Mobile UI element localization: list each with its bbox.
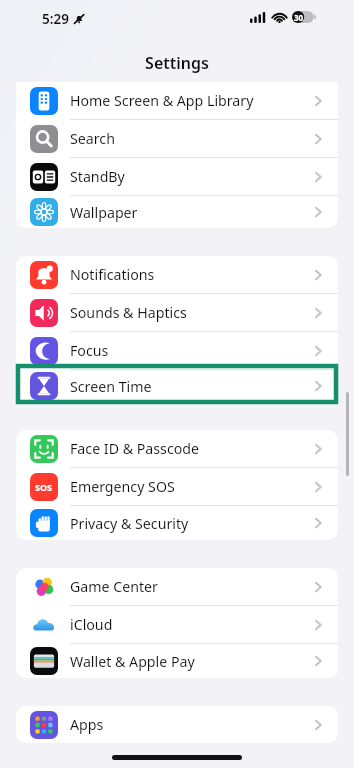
button[interactable]: SOS xyxy=(16,468,338,505)
staticText: Emergency SOS xyxy=(70,477,312,496)
staticText: Game Center xyxy=(70,577,312,596)
staticText: Notifications xyxy=(70,265,312,284)
button[interactable]: Wallpaper xyxy=(16,196,338,228)
button[interactable]: Face ID & Passcode xyxy=(16,430,338,467)
button[interactable]: Screen Time xyxy=(16,370,338,402)
button[interactable]: Privacy & Security xyxy=(16,506,338,540)
staticText: 30 xyxy=(294,12,304,23)
staticText: iCloud xyxy=(70,615,312,634)
button[interactable]: Home Screen & App Library xyxy=(16,82,338,119)
button[interactable]: Wallet & Apple Pay xyxy=(16,644,338,678)
staticText: Focus xyxy=(70,341,312,360)
button[interactable]: Game Center xyxy=(16,568,338,605)
staticText: Wallpaper xyxy=(70,203,312,222)
staticText: Search xyxy=(70,129,312,148)
staticText: StandBy xyxy=(70,167,312,186)
staticText: Settings xyxy=(0,52,354,74)
staticText: Wallet & Apple Pay xyxy=(70,652,312,671)
staticText: Screen Time xyxy=(70,377,312,396)
button[interactable]: Sounds & Haptics xyxy=(16,294,338,331)
button[interactable]: Notifications xyxy=(16,256,338,293)
staticText: SOS xyxy=(35,481,53,493)
button[interactable]: StandBy xyxy=(16,158,338,195)
staticText: Sounds & Haptics xyxy=(70,303,312,322)
staticText: Privacy & Security xyxy=(70,514,312,533)
button[interactable]: Apps xyxy=(16,706,338,743)
button[interactable]: iCloud xyxy=(16,606,338,643)
button[interactable]: Focus xyxy=(16,332,338,369)
staticText: Home Screen & App Library xyxy=(70,91,312,110)
staticText: 5:29 xyxy=(42,10,69,28)
staticText: Face ID & Passcode xyxy=(70,439,312,458)
staticText: Apps xyxy=(70,715,312,734)
button[interactable]: Search xyxy=(16,120,338,157)
